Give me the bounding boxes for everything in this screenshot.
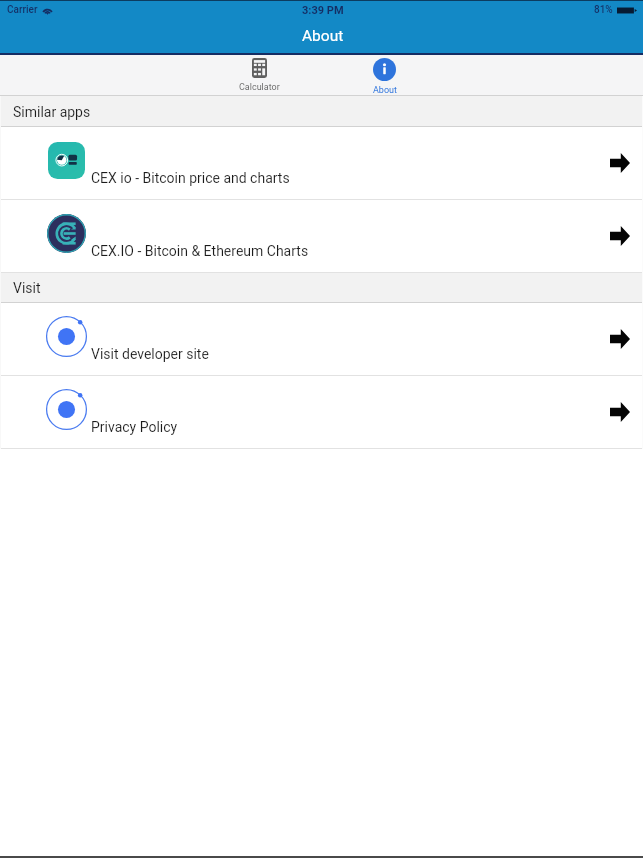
- staticText: Visit developer site: [91, 346, 209, 362]
- button[interactable]: CEX io - Bitcoin price and charts: [0, 127, 643, 199]
- staticText: Visit: [13, 280, 41, 296]
- staticText: 81%: [594, 4, 613, 16]
- staticText: CEX io - Bitcoin price and charts: [91, 170, 290, 186]
- staticText: Calculator: [239, 82, 280, 93]
- staticText: Similar apps: [13, 104, 91, 120]
- button[interactable]: Calculator: [197, 55, 322, 93]
- staticText: Privacy Policy: [91, 419, 178, 435]
- staticText: 3:39 PM: [302, 4, 344, 17]
- staticText: About: [373, 85, 397, 95]
- button[interactable]: About: [322, 55, 447, 95]
- button[interactable]: Visit developer site: [0, 303, 643, 375]
- staticText: CEX.IO - Bitcoin & Ethereum Charts: [91, 243, 309, 259]
- staticText: About: [302, 27, 344, 45]
- button[interactable]: Privacy Policy: [0, 376, 643, 448]
- staticText: Carrier: [7, 4, 38, 16]
- button[interactable]: CEX.IO - Bitcoin & Ethereum Charts: [0, 200, 643, 272]
